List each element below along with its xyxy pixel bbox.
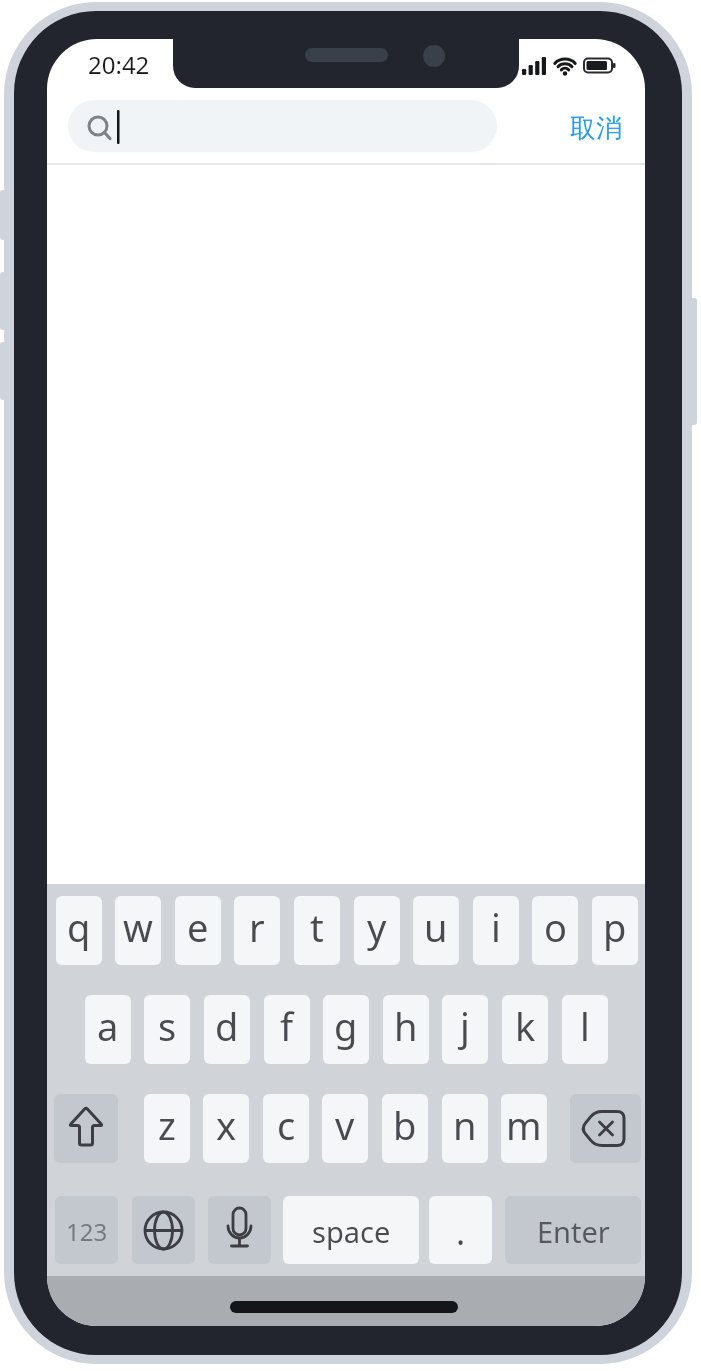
staticText: o	[544, 901, 567, 953]
button[interactable]: g	[323, 995, 369, 1064]
button[interactable]: y	[354, 896, 400, 965]
staticText: Enter	[537, 1212, 610, 1251]
button[interactable]: q	[56, 896, 102, 965]
staticText: t	[310, 901, 324, 953]
button[interactable]: x	[203, 1094, 249, 1163]
button[interactable]: a	[85, 995, 131, 1064]
staticText: p	[603, 901, 627, 953]
staticText: .	[456, 1209, 466, 1255]
button[interactable]	[208, 1196, 271, 1264]
staticText: k	[515, 1000, 536, 1052]
button[interactable]: j	[442, 995, 488, 1064]
button[interactable]	[132, 1196, 195, 1264]
button[interactable]: i	[473, 896, 519, 965]
staticText: a	[97, 1000, 119, 1052]
button[interactable]: d	[204, 995, 250, 1064]
button[interactable]: m	[501, 1094, 547, 1163]
staticText: l	[580, 1000, 590, 1052]
staticText: u	[424, 901, 448, 953]
button[interactable]: n	[442, 1094, 488, 1163]
button[interactable]: p	[592, 896, 638, 965]
button[interactable]: u	[413, 896, 459, 965]
button[interactable]: .	[429, 1196, 492, 1264]
button[interactable]: space	[283, 1196, 419, 1264]
button[interactable]: e	[175, 896, 221, 965]
staticText: d	[215, 1000, 239, 1052]
button[interactable]: r	[234, 896, 280, 965]
staticText: i	[491, 901, 501, 953]
button[interactable]: v	[322, 1094, 368, 1163]
button[interactable]: o	[532, 896, 578, 965]
staticText: b	[393, 1099, 417, 1151]
button[interactable]	[54, 1094, 118, 1163]
staticText: s	[158, 1000, 177, 1052]
button[interactable]: Enter	[505, 1196, 641, 1264]
staticText: r	[249, 901, 265, 953]
staticText: z	[158, 1099, 176, 1151]
staticText: g	[334, 1000, 358, 1052]
button[interactable]: f	[264, 995, 310, 1064]
staticText: x	[216, 1099, 237, 1151]
button[interactable]: 取消	[561, 110, 631, 146]
button[interactable]: s	[144, 995, 190, 1064]
staticText: e	[187, 901, 209, 953]
button[interactable]: h	[383, 995, 429, 1064]
staticText: n	[453, 1099, 477, 1151]
button[interactable]	[570, 1094, 641, 1163]
button[interactable]: 123	[55, 1196, 118, 1264]
staticText: m	[506, 1099, 542, 1151]
staticText: y	[367, 901, 387, 953]
staticText: f	[280, 1000, 294, 1052]
staticText: 123	[66, 1215, 108, 1248]
button[interactable]: w	[115, 896, 161, 965]
button[interactable]	[68, 100, 497, 152]
staticText: v	[335, 1099, 355, 1151]
button[interactable]: z	[144, 1094, 190, 1163]
staticText: h	[394, 1000, 418, 1052]
staticText: c	[277, 1099, 296, 1151]
staticText: 取消	[570, 112, 622, 145]
button[interactable]: t	[294, 896, 340, 965]
staticText: w	[123, 901, 153, 953]
staticText: q	[67, 901, 91, 953]
button[interactable]: k	[502, 995, 548, 1064]
staticText: 20:42	[88, 48, 150, 81]
staticText: space	[312, 1212, 391, 1251]
staticText: j	[460, 1000, 470, 1052]
button[interactable]: c	[263, 1094, 309, 1163]
button[interactable]: l	[562, 995, 608, 1064]
button[interactable]: b	[382, 1094, 428, 1163]
